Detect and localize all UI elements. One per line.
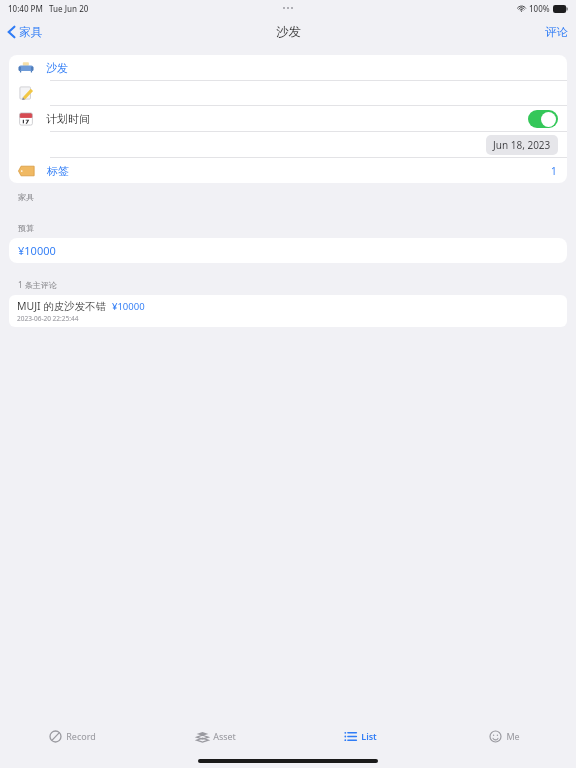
staticText: 10:40 PM — [8, 3, 43, 14]
button[interactable]: Jun 18, 2023 — [9, 132, 567, 157]
staticText: 1 条主评论 — [18, 279, 57, 290]
button[interactable]: 家具 — [0, 21, 52, 43]
button[interactable]: Record — [0, 718, 144, 754]
button[interactable]: Asset — [144, 718, 288, 754]
button[interactable]: List — [288, 718, 432, 754]
staticText: Tue Jun 20 — [49, 3, 89, 14]
button[interactable]: 评论 — [537, 19, 576, 45]
staticText: ¥10000 — [18, 243, 56, 258]
staticText: ¥10000 — [112, 300, 145, 313]
staticText: Asset — [213, 730, 236, 742]
staticText: 2023-06-20 22:25:44 — [17, 314, 79, 323]
staticText: 标签 — [47, 164, 69, 178]
staticText: 1 — [551, 164, 557, 178]
staticText: Record — [66, 730, 96, 742]
staticText: Me — [506, 730, 520, 742]
button[interactable]: 计划时间 — [9, 106, 567, 131]
staticText: 家具 — [19, 25, 42, 39]
staticText: 预算 — [18, 223, 34, 233]
button[interactable]: 沙发 — [9, 55, 567, 80]
staticText: 家具 — [18, 192, 34, 202]
staticText: 沙发 — [46, 61, 68, 75]
staticText: List — [361, 730, 377, 742]
button[interactable]: MUJI 的皮沙发不错 — [9, 295, 567, 327]
button[interactable]: Me — [432, 718, 576, 754]
button[interactable]: ¥10000 — [9, 238, 567, 263]
staticText: Jun 18, 2023 — [493, 138, 551, 152]
button[interactable]: Planned time toggle — [528, 110, 558, 128]
staticText: MUJI 的皮沙发不错 — [17, 299, 107, 313]
staticText: 沙发 — [276, 24, 301, 40]
button[interactable] — [9, 81, 567, 105]
button[interactable]: 标签 — [9, 158, 567, 183]
staticText: 计划时间 — [46, 112, 90, 126]
staticText: 100% — [529, 3, 550, 14]
